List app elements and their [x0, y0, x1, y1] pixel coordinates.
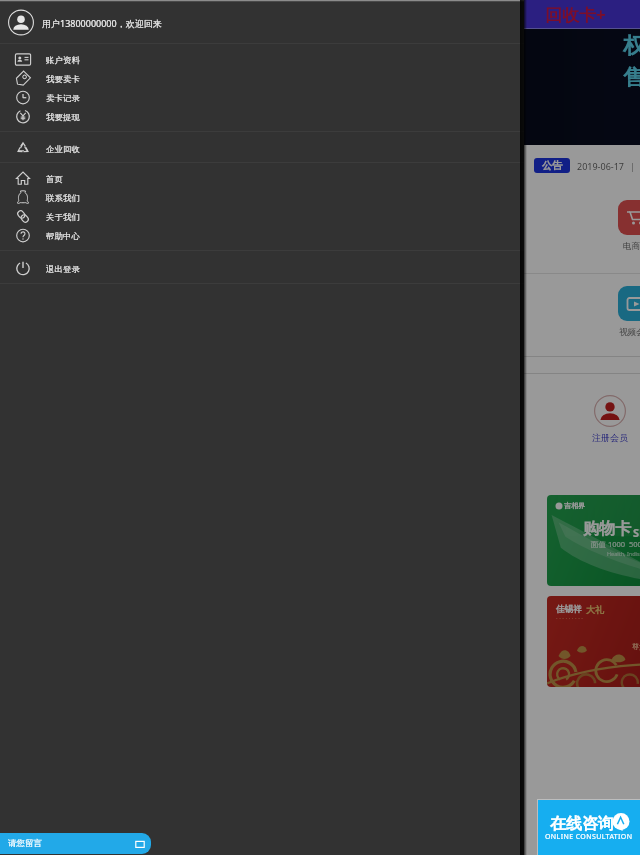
staticText: 电商卡	[623, 241, 640, 252]
button[interactable]: 关于我们	[0, 207, 524, 226]
staticText: 佳锡祥	[556, 604, 582, 615]
staticText: 请您留言	[8, 838, 42, 849]
staticText: 我要卖卡	[46, 74, 80, 84]
staticText: 卖卡记录	[46, 93, 80, 103]
staticText: 公告	[542, 159, 562, 172]
staticText: 权威机构	[623, 32, 640, 60]
staticText: 回收卡+	[545, 3, 606, 26]
other: Message	[134, 838, 146, 850]
button[interactable]: 账户资料	[0, 50, 524, 69]
staticText: 我要提现	[46, 112, 80, 122]
button[interactable]: 我要卖卡	[0, 69, 524, 88]
button[interactable]: 佳锡祥	[547, 596, 640, 687]
button[interactable]: 用户13800000000，欢迎回来	[0, 2, 524, 43]
button[interactable]: 退出登录	[0, 259, 524, 278]
staticText: |	[630, 160, 635, 172]
button[interactable]: 首页	[0, 169, 524, 188]
button[interactable]: 吉相界	[547, 495, 640, 586]
staticText: ONLINE CONSULTATION	[545, 832, 633, 842]
button[interactable]: 卖卡记录	[0, 88, 524, 107]
staticText: 大礼	[586, 604, 604, 615]
button[interactable]: 视频会员	[618, 286, 640, 321]
staticText: 关于我们	[46, 212, 80, 222]
button[interactable]: 联系我们	[0, 188, 524, 207]
staticText: 尊贵礼品卡	[632, 642, 640, 651]
button[interactable]: 帮助中心	[0, 226, 524, 245]
staticText: 2019-06-17	[577, 160, 624, 172]
button[interactable]: 公告	[534, 158, 570, 173]
staticText: · · · · · · · · ·	[556, 614, 583, 622]
staticText: 注册会员	[592, 432, 628, 443]
button[interactable]: 在线咨询	[538, 800, 640, 855]
staticText: 退出登录	[46, 264, 80, 274]
staticText: 视频会员	[619, 327, 640, 338]
staticText: 售卡回收	[623, 64, 640, 92]
staticText: 在线咨询	[550, 814, 614, 834]
button[interactable]: 企业回收	[0, 139, 524, 158]
staticText: Health, Indispensable	[607, 550, 640, 557]
staticText: 购物卡	[583, 519, 631, 539]
staticText: 账户资料	[46, 55, 80, 65]
staticText: SHOPPING	[633, 525, 640, 540]
button[interactable]: 我要提现	[0, 107, 524, 126]
staticText: 企业回收	[46, 144, 80, 154]
staticText: 面值 1000 500 200 100	[591, 539, 640, 549]
staticText: 帮助中心	[46, 231, 80, 241]
staticText: 用户13800000000，欢迎回来	[42, 17, 162, 29]
button[interactable]: 请您留言	[0, 833, 151, 854]
staticText: 联系我们	[46, 193, 80, 203]
staticText: 首页	[46, 174, 63, 184]
staticText: 吉相界	[564, 501, 585, 510]
button[interactable]: 电商卡	[618, 200, 640, 235]
